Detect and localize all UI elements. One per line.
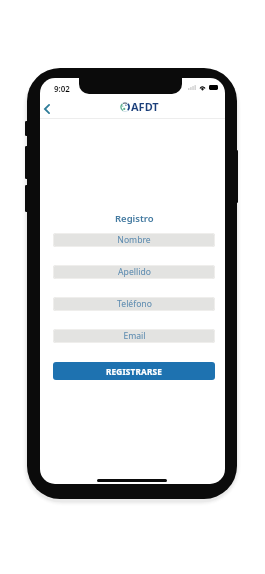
staticText: 9:02: [54, 83, 70, 94]
staticText: Nombre: [117, 234, 151, 246]
staticText: REGISTRARSE: [106, 366, 163, 377]
button[interactable]: REGISTRARSE: [53, 362, 215, 380]
button[interactable]: Email: [53, 329, 215, 343]
staticText: Email: [123, 330, 146, 342]
staticText: AFDT: [131, 99, 159, 114]
staticText: Teléfono: [117, 298, 152, 310]
button[interactable]: Nombre: [53, 233, 215, 247]
staticText: Registro: [115, 212, 154, 225]
button[interactable]: Back: [40, 98, 57, 120]
staticText: Apellido: [118, 266, 151, 278]
button[interactable]: Apellido: [53, 265, 215, 279]
button[interactable]: Teléfono: [53, 297, 215, 311]
